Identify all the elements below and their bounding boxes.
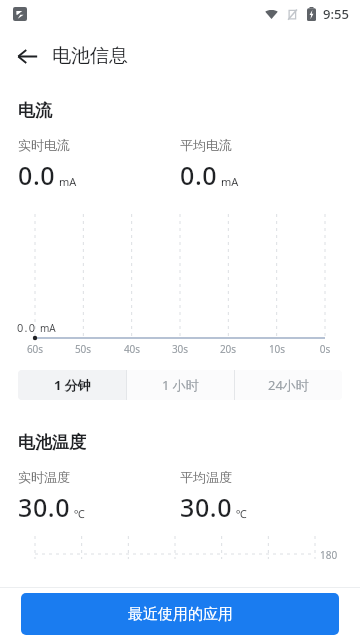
- staticText: 30s: [165, 342, 195, 356]
- staticText: 平均温度: [180, 469, 232, 485]
- staticText: 实时温度: [18, 469, 70, 485]
- staticText: ℃: [236, 506, 247, 521]
- button[interactable]: 24小时: [235, 370, 342, 400]
- staticText: 40s: [117, 342, 147, 356]
- staticText: 60s: [20, 342, 50, 356]
- staticText: 24小时: [268, 376, 309, 394]
- staticText: 20s: [213, 342, 243, 356]
- button[interactable]: 最近使用的应用: [21, 593, 339, 635]
- button[interactable]: 1 小时: [127, 370, 234, 400]
- staticText: 平均电流: [180, 137, 232, 153]
- staticText: 0.0: [180, 158, 218, 192]
- staticText: 9:55: [323, 5, 349, 23]
- staticText: 电流: [18, 100, 52, 121]
- button[interactable]: Back: [5, 34, 49, 78]
- staticText: 50s: [68, 342, 98, 356]
- staticText: 10s: [262, 342, 292, 356]
- staticText: ℃: [74, 506, 85, 521]
- staticText: 最近使用的应用: [128, 605, 233, 624]
- staticText: 0s: [310, 342, 340, 356]
- button[interactable]: 1 分钟: [18, 370, 126, 400]
- staticText: mA: [59, 174, 77, 189]
- staticText: 30.0: [180, 490, 233, 524]
- staticText: mA: [221, 174, 239, 189]
- staticText: 0.0: [18, 158, 56, 192]
- staticText: mA: [40, 321, 56, 335]
- staticText: 0.0: [17, 320, 37, 335]
- staticText: 实时电流: [18, 137, 70, 153]
- staticText: 30.0: [18, 490, 71, 524]
- staticText: 电池信息: [52, 44, 128, 68]
- staticText: 180: [320, 548, 338, 562]
- staticText: 1 分钟: [54, 376, 91, 394]
- staticText: 1 小时: [162, 376, 199, 394]
- staticText: 电池温度: [18, 432, 86, 453]
